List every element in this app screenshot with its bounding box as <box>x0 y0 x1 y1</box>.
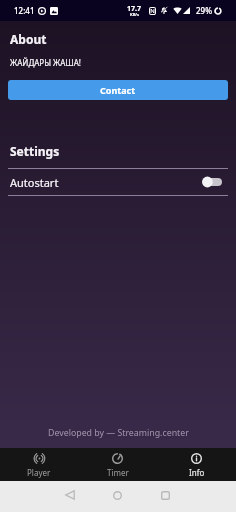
button[interactable]: Home <box>113 491 122 500</box>
staticText: ЖАЙДАРЫ ЖАША! <box>10 57 81 68</box>
button[interactable]: Back <box>65 490 75 500</box>
button[interactable]: Player <box>0 448 78 478</box>
staticText: Timer <box>107 467 129 478</box>
staticText: 29% <box>196 5 212 16</box>
staticText: KB/s <box>130 12 139 17</box>
staticText: Player <box>27 467 51 478</box>
staticText: 17.7 <box>127 4 141 14</box>
staticText: Contact <box>100 84 136 96</box>
button[interactable]: Contact <box>8 80 228 100</box>
staticText: Autostart <box>10 175 59 190</box>
staticText: About <box>10 31 47 47</box>
button[interactable]: Info <box>157 448 236 478</box>
button[interactable]: Timer <box>78 448 157 478</box>
staticText: Developed by — Streaming.center <box>48 427 189 439</box>
button[interactable]: Recents <box>161 491 170 500</box>
button[interactable]: Autostart toggle <box>202 175 222 189</box>
button[interactable]: Autostart <box>0 169 236 195</box>
staticText: Settings <box>10 143 60 159</box>
staticText: Info <box>189 467 205 478</box>
staticText: 12:41 <box>14 5 35 16</box>
